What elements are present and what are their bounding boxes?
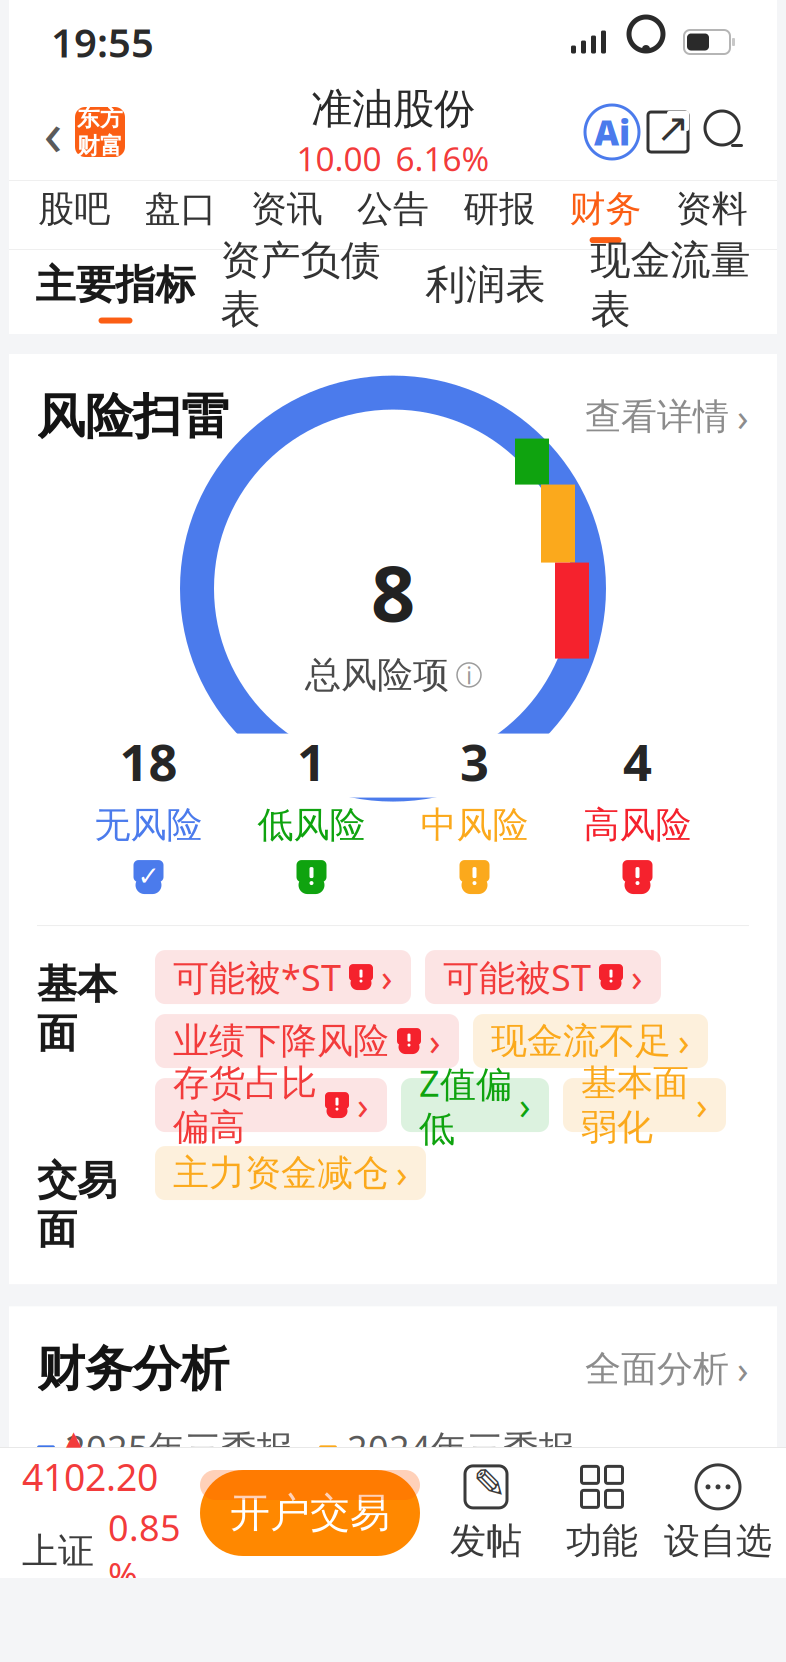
- button[interactable]: 查看详情: [585, 384, 749, 450]
- staticText: 基本面: [37, 960, 117, 1058]
- staticText: 财务分析: [37, 1340, 229, 1399]
- staticText: ✎: [473, 1461, 507, 1507]
- staticText: ›: [678, 1016, 690, 1066]
- staticText: 19:55: [51, 15, 154, 68]
- staticText: i: [466, 659, 472, 691]
- staticText: 风险扫雷: [37, 387, 229, 446]
- staticText: 8: [371, 540, 415, 643]
- staticText: 功能: [566, 1519, 638, 1563]
- staticText: 无风险: [94, 803, 202, 847]
- button[interactable]: 主要指标: [23, 250, 208, 334]
- staticText: Ai: [594, 109, 630, 155]
- staticText: 利润表: [425, 260, 545, 309]
- button[interactable]: 利润表: [393, 250, 578, 334]
- staticText: ‹: [43, 91, 62, 173]
- button[interactable]: 可能被*ST: [155, 950, 411, 1004]
- button[interactable]: Back: [31, 102, 75, 162]
- staticText: 盈利能力: [313, 1542, 473, 1591]
- staticText: 存货占比偏高: [173, 1061, 317, 1149]
- staticText: 6.16%: [395, 136, 489, 181]
- staticText: ✓: [137, 861, 159, 891]
- staticText: 发帖: [450, 1519, 522, 1563]
- staticText: 上证: [22, 1529, 94, 1573]
- button[interactable]: 全面分析: [585, 1336, 749, 1402]
- button[interactable]: 开户交易: [200, 1470, 420, 1556]
- staticText: 资料: [676, 187, 748, 231]
- button[interactable]: 公告: [340, 181, 446, 249]
- button[interactable]: ✎: [428, 1448, 544, 1578]
- staticText: 交易面: [37, 1156, 117, 1254]
- button[interactable]: 资料: [659, 181, 765, 249]
- button[interactable]: 财务: [552, 181, 659, 249]
- staticText: 可能被ST: [443, 953, 591, 1001]
- button[interactable]: 搜索: [697, 103, 755, 161]
- staticText: ›: [429, 1016, 441, 1066]
- staticText: 开户交易: [230, 1488, 390, 1537]
- staticText: ›: [696, 1080, 708, 1130]
- staticText: 查看详情: [585, 395, 729, 439]
- button[interactable]: 功能: [544, 1448, 660, 1578]
- staticText: 盘口: [144, 187, 216, 231]
- button[interactable]: 现金流量表: [578, 250, 763, 334]
- staticText: 2025年三季报: [65, 1424, 293, 1472]
- staticText: 3: [460, 728, 489, 795]
- staticText: 主要指标: [35, 260, 195, 309]
- button[interactable]: 分享: [639, 103, 697, 161]
- staticText: 可能被*ST: [173, 953, 341, 1001]
- staticText: 18: [119, 728, 177, 795]
- staticText: ›: [519, 1080, 531, 1130]
- button[interactable]: ▲: [0, 1427, 200, 1599]
- staticText: ›: [737, 1344, 749, 1394]
- button[interactable]: 业绩下降风险: [155, 1014, 459, 1068]
- button[interactable]: 东方财富: [75, 107, 125, 157]
- staticText: ›: [381, 952, 393, 1002]
- staticText: ›: [631, 952, 643, 1002]
- staticText: 资讯: [251, 187, 323, 231]
- staticText: ›: [396, 1148, 408, 1198]
- staticText: 财务: [570, 187, 642, 231]
- staticText: 4: [623, 728, 652, 795]
- staticText: 10.00: [296, 136, 381, 181]
- staticText: 公告: [357, 187, 429, 231]
- button[interactable]: 基本面弱化: [563, 1078, 726, 1132]
- staticText: 2024年三季报: [347, 1424, 575, 1472]
- button[interactable]: 主力资金减仓: [155, 1146, 426, 1200]
- staticText: 设自选: [664, 1519, 772, 1563]
- staticText: 中风险: [420, 803, 528, 847]
- staticText: 低风险: [257, 803, 365, 847]
- staticText: 资产负债表: [220, 236, 380, 334]
- staticText: ›: [737, 392, 749, 442]
- button[interactable]: 研报: [446, 181, 552, 249]
- staticText: 东方: [77, 104, 123, 132]
- button[interactable]: 现金流不足: [473, 1014, 708, 1068]
- staticText: 高风险: [583, 803, 691, 847]
- button[interactable]: 股吧: [21, 181, 127, 249]
- button[interactable]: 盘口: [127, 181, 234, 249]
- staticText: 准油股份: [311, 83, 475, 134]
- staticText: 业绩下降风险: [173, 1019, 389, 1063]
- button[interactable]: 资讯: [234, 181, 340, 249]
- button[interactable]: 存货占比偏高: [155, 1078, 387, 1132]
- staticText: 现金流不足: [491, 1019, 671, 1063]
- staticText: ↗: [656, 105, 690, 151]
- button[interactable]: 可能被ST: [425, 950, 661, 1004]
- button[interactable]: Z值偏低: [401, 1078, 549, 1132]
- staticText: ▲: [66, 1427, 81, 1450]
- button[interactable]: AI 助手: [585, 105, 639, 159]
- staticText: 0.85%: [108, 1503, 181, 1599]
- button[interactable]: 设自选: [660, 1448, 776, 1578]
- staticText: Z值偏低: [419, 1059, 512, 1151]
- staticText: ›: [357, 1080, 369, 1130]
- button[interactable]: 资产负债表: [208, 250, 393, 334]
- staticText: 1: [297, 728, 326, 795]
- staticText: 4102.20: [22, 1452, 158, 1501]
- staticText: 股吧: [38, 187, 110, 231]
- staticText: 现金流量表: [590, 236, 750, 334]
- staticText: 全面分析: [585, 1347, 729, 1391]
- staticText: 研报: [463, 187, 535, 231]
- staticText: 主力资金减仓: [173, 1151, 389, 1195]
- staticText: 基本面弱化: [581, 1061, 689, 1149]
- staticText: 总风险项: [305, 653, 449, 697]
